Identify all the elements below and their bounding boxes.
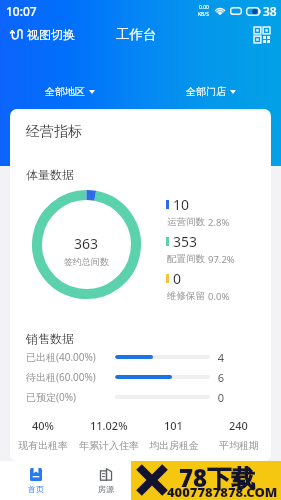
- staticText: 4007787878.COM: [167, 483, 278, 500]
- staticText: 97.2%: [208, 253, 235, 266]
- staticText: 待出租(60.00%): [26, 370, 115, 384]
- staticText: 经营指标: [26, 123, 82, 141]
- staticText: 签约总间数: [64, 256, 109, 267]
- staticText: KB/S: [198, 11, 209, 18]
- staticText: 全部门店: [186, 85, 226, 98]
- button[interactable]: 首页: [0, 461, 71, 500]
- staticText: 6: [210, 370, 232, 385]
- staticText: 首页: [28, 484, 44, 494]
- staticText: 房源: [98, 484, 114, 494]
- staticText: 78下载: [179, 461, 256, 494]
- button[interactable]: Scan QR code: [249, 22, 275, 48]
- staticText: 销售数据: [26, 331, 74, 346]
- staticText: 40%: [32, 418, 54, 433]
- button[interactable]: 全部地区: [37, 81, 103, 102]
- staticText: 10: [173, 195, 190, 214]
- staticText: 353: [173, 232, 198, 251]
- staticText: 视图切换: [27, 27, 75, 42]
- staticText: 2.8%: [208, 216, 230, 229]
- staticText: 0: [173, 269, 182, 288]
- staticText: 101: [164, 418, 183, 433]
- button[interactable]: 视图切换: [8, 23, 77, 46]
- staticText: 运营间数: [167, 216, 205, 228]
- staticText: 年累计入住率: [79, 439, 139, 452]
- button[interactable]: 房源: [71, 461, 141, 500]
- staticText: 维修保留: [167, 290, 205, 302]
- staticText: 0: [210, 390, 232, 405]
- staticText: 全部地区: [45, 85, 85, 98]
- staticText: 体量数据: [26, 167, 74, 182]
- staticText: 已预定(0%): [26, 390, 115, 404]
- staticText: 10:07: [6, 3, 37, 19]
- staticText: 38: [263, 3, 277, 19]
- staticText: 均出房租金: [149, 439, 199, 452]
- staticText: 0.0%: [208, 290, 230, 303]
- staticText: 0.00: [199, 4, 209, 11]
- staticText: 已出租(40.00%): [26, 350, 115, 364]
- button[interactable]: 全部门店: [178, 81, 244, 102]
- staticText: 平均租期: [219, 439, 259, 452]
- staticText: 363: [74, 234, 99, 253]
- staticText: 现有出租率: [18, 439, 68, 452]
- staticText: 配置间数: [167, 253, 205, 265]
- staticText: 工作台: [116, 26, 157, 43]
- staticText: 240: [229, 418, 248, 433]
- staticText: 4: [210, 350, 232, 365]
- staticText: 11.02%: [90, 418, 128, 433]
